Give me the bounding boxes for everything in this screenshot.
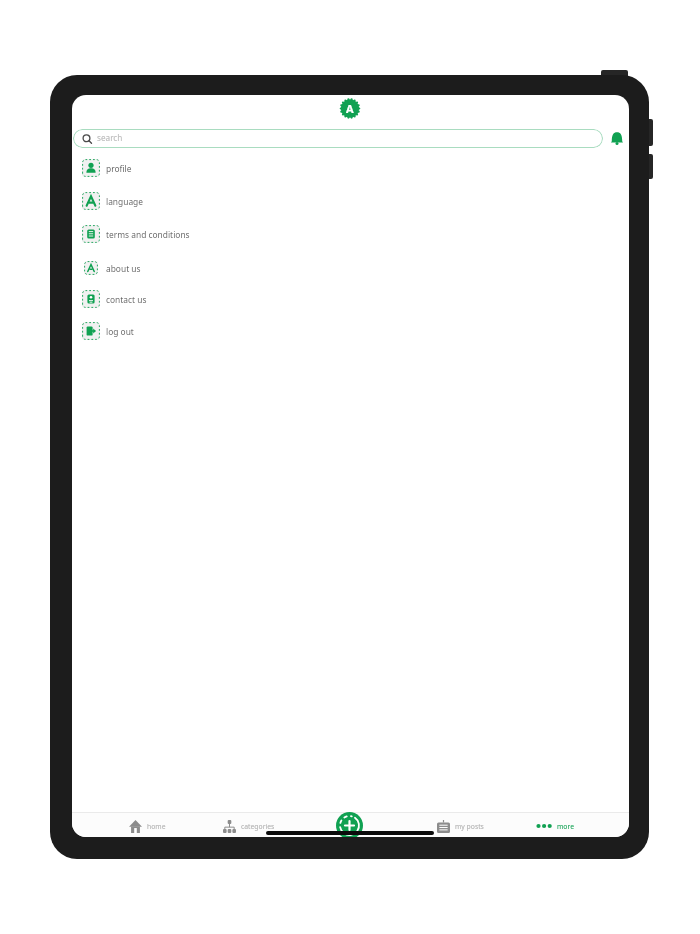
button[interactable]: search — [73, 129, 603, 148]
staticText: contact us — [106, 294, 147, 305]
button[interactable]: terms and conditions — [82, 225, 382, 243]
button[interactable]: log out — [82, 322, 382, 340]
button[interactable]: A — [339, 98, 361, 119]
button[interactable] — [610, 131, 624, 146]
button[interactable]: more — [536, 818, 574, 834]
button[interactable]: contact us — [82, 290, 382, 308]
staticText: about us — [106, 263, 141, 274]
staticText: language — [106, 196, 144, 207]
button[interactable]: profile — [82, 159, 382, 177]
staticText: terms and conditions — [106, 229, 190, 240]
staticText: log out — [106, 326, 134, 337]
button[interactable]: my posts — [437, 818, 484, 834]
button[interactable] — [336, 812, 363, 837]
staticText: home — [147, 822, 166, 831]
button[interactable]: categories — [223, 818, 275, 834]
button[interactable]: about us — [82, 259, 382, 277]
staticText: my posts — [455, 822, 484, 831]
staticText: search — [97, 132, 123, 143]
staticText: A — [346, 101, 354, 116]
staticText: more — [557, 822, 574, 831]
staticText: categories — [241, 822, 275, 831]
button[interactable]: language — [82, 192, 382, 210]
staticText: profile — [106, 163, 132, 174]
button[interactable]: home — [129, 818, 166, 834]
